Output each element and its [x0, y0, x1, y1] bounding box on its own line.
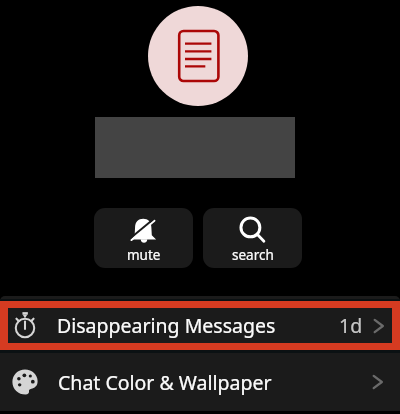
staticText: Chat Color & Wallpaper [58, 369, 272, 396]
button[interactable]: search [203, 208, 302, 268]
staticText: Disappearing Messages [57, 312, 276, 339]
button[interactable]: mute [94, 208, 193, 268]
button[interactable]: Contact avatar [148, 6, 248, 106]
staticText: mute [127, 246, 161, 264]
staticText: search [232, 246, 274, 264]
staticText: 1d [339, 312, 363, 339]
button[interactable]: Disappearing Messages [8, 308, 392, 343]
button[interactable]: Chat Color & Wallpaper [0, 353, 400, 411]
